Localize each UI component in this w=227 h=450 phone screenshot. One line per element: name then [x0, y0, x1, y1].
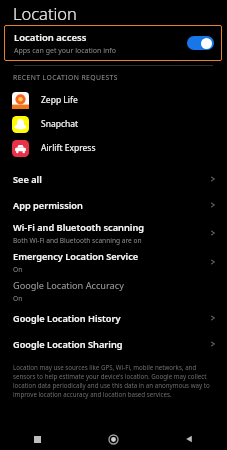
staticText: Apps can get your location info — [14, 46, 116, 56]
button[interactable]: See all — [0, 166, 227, 192]
staticText: RECENT LOCATION REQUESTS — [13, 73, 118, 82]
button[interactable]: Zepp Life — [0, 88, 227, 112]
button[interactable]: Wi-Fi and Bluetooth scanning — [0, 218, 227, 247]
staticText: Google Location History — [13, 312, 121, 325]
staticText: Airlift Express — [41, 142, 96, 154]
button[interactable]: Snapchat — [0, 112, 227, 136]
button[interactable]: Airlift Express — [0, 136, 227, 160]
staticText: Location — [13, 2, 77, 24]
staticText: Location may use sources like GPS, Wi-Fi… — [13, 363, 213, 399]
staticText: On — [13, 265, 23, 274]
button[interactable]: Google Location Accuracy — [0, 276, 227, 305]
button[interactable]: Google Location Sharing — [0, 331, 227, 357]
button[interactable]: Home — [75, 428, 151, 450]
button[interactable]: Recent apps — [0, 428, 75, 450]
staticText: Wi-Fi and Bluetooth scanning — [13, 221, 144, 234]
button[interactable]: Back — [151, 428, 227, 450]
staticText: App permission — [13, 199, 83, 212]
staticText: See all — [13, 173, 42, 186]
button[interactable]: Location access — [4, 25, 222, 61]
staticText: Zepp Life — [41, 94, 78, 106]
button[interactable]: Google Location History — [0, 305, 227, 331]
button[interactable]: Location access toggle, on — [187, 36, 214, 50]
button[interactable]: Emergency Location Service — [0, 247, 227, 276]
button[interactable]: App permission — [0, 192, 227, 218]
staticText: Google Location Accuracy — [13, 279, 124, 292]
staticText: Location access — [14, 31, 87, 44]
staticText: Both Wi-Fi and Bluetooth scanning are on — [13, 236, 142, 245]
staticText: Google Location Sharing — [13, 338, 123, 351]
staticText: On — [13, 294, 23, 303]
staticText: Snapchat — [41, 118, 79, 130]
staticText: Emergency Location Service — [13, 250, 139, 263]
